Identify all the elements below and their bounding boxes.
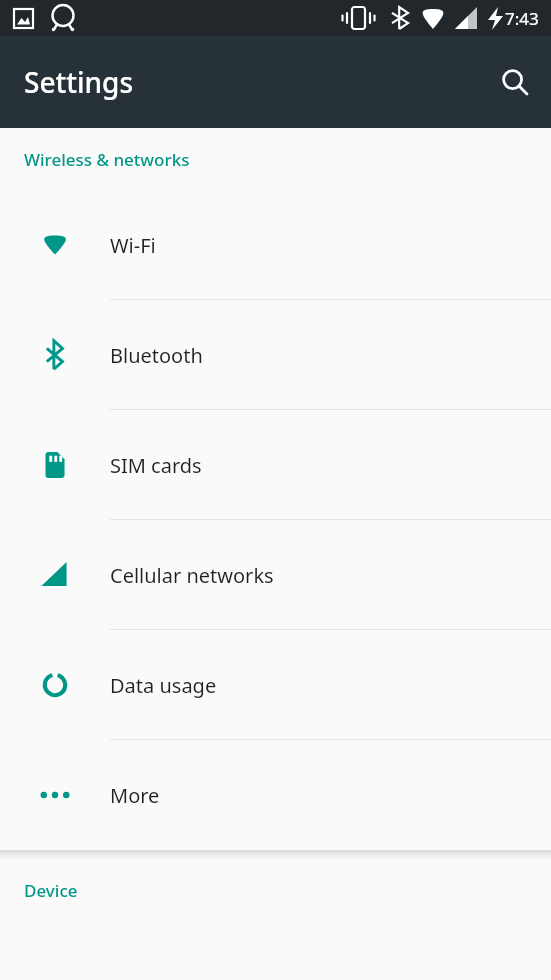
staticText: Settings	[24, 63, 134, 101]
staticText: Bluetooth	[110, 342, 203, 369]
staticText: Device	[24, 879, 78, 902]
button[interactable]: Wi-Fi	[0, 190, 551, 300]
staticText: More	[110, 782, 160, 809]
button[interactable]: Data usage	[0, 630, 551, 740]
button[interactable]: Search	[487, 54, 543, 110]
staticText: Wi-Fi	[110, 232, 156, 259]
button[interactable]: More	[0, 740, 551, 850]
button[interactable]: Cellular networks	[0, 520, 551, 630]
staticText: Data usage	[110, 672, 217, 699]
button[interactable]: Bluetooth	[0, 300, 551, 410]
staticText: Cellular networks	[110, 562, 274, 589]
button[interactable]: SIM cards	[0, 410, 551, 520]
staticText: SIM cards	[110, 452, 202, 479]
staticText: Wireless & networks	[24, 148, 190, 171]
staticText: 7:43	[505, 7, 539, 30]
